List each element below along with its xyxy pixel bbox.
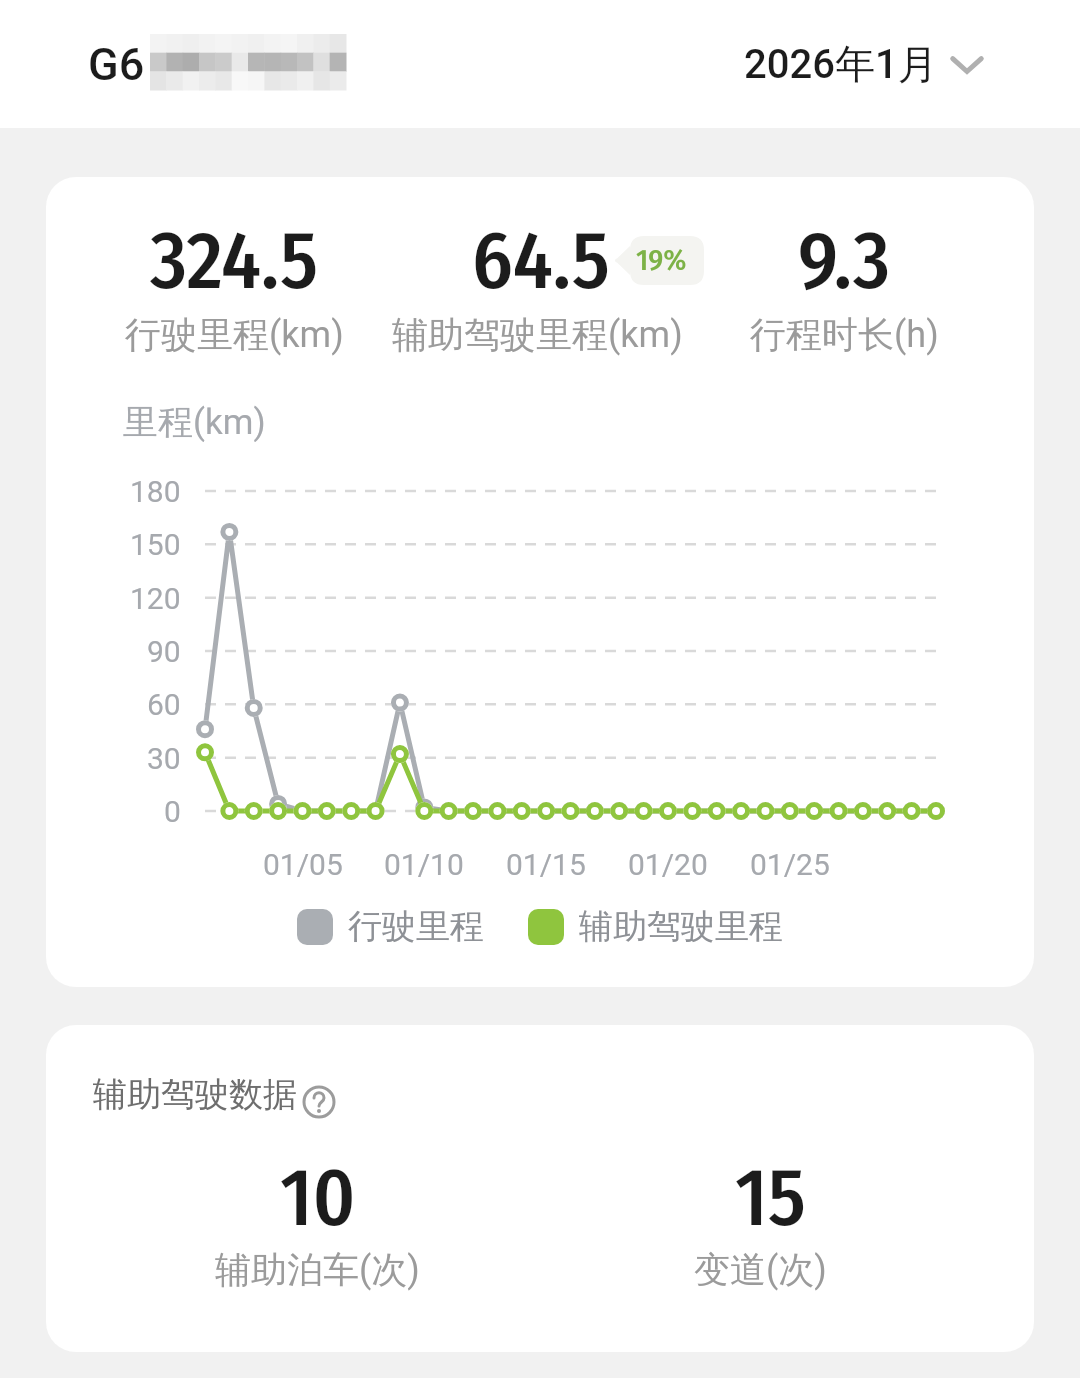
- staticText: 60: [147, 687, 181, 722]
- button[interactable]: 2026年1月: [744, 39, 984, 89]
- staticText: 辅助驾驶里程: [579, 905, 783, 948]
- staticText: 120: [130, 581, 181, 616]
- staticText: 变道(次): [694, 1247, 827, 1292]
- staticText: G6: [88, 38, 145, 91]
- button[interactable]: [302, 1085, 336, 1119]
- staticText: 辅助驾驶数据: [93, 1073, 297, 1116]
- staticText: 行驶里程(km): [125, 312, 344, 357]
- staticText: 30: [147, 741, 181, 776]
- staticText: 90: [147, 634, 181, 669]
- staticText: 0: [164, 794, 181, 829]
- staticText: 行程时长(h): [750, 312, 939, 357]
- staticText: 01/10: [384, 847, 464, 882]
- staticText: 01/25: [750, 847, 830, 882]
- staticText: 180: [130, 474, 181, 509]
- staticText: 辅助泊车(次): [215, 1247, 420, 1292]
- staticText: 19%: [636, 242, 687, 278]
- staticText: 2026年1月: [744, 39, 938, 89]
- staticText: 9.3: [798, 213, 890, 309]
- staticText: 里程(km): [123, 400, 266, 444]
- staticText: 15: [735, 1150, 806, 1246]
- staticText: 324.5: [150, 213, 319, 309]
- staticText: 64.5: [472, 213, 610, 309]
- staticText: 150: [130, 527, 181, 562]
- staticText: 01/20: [628, 847, 708, 882]
- staticText: 行驶里程: [348, 905, 484, 948]
- staticText: 辅助驾驶里程(km): [392, 312, 683, 357]
- staticText: 10: [280, 1150, 356, 1246]
- staticText: 01/15: [506, 847, 586, 882]
- staticText: 01/05: [263, 847, 343, 882]
